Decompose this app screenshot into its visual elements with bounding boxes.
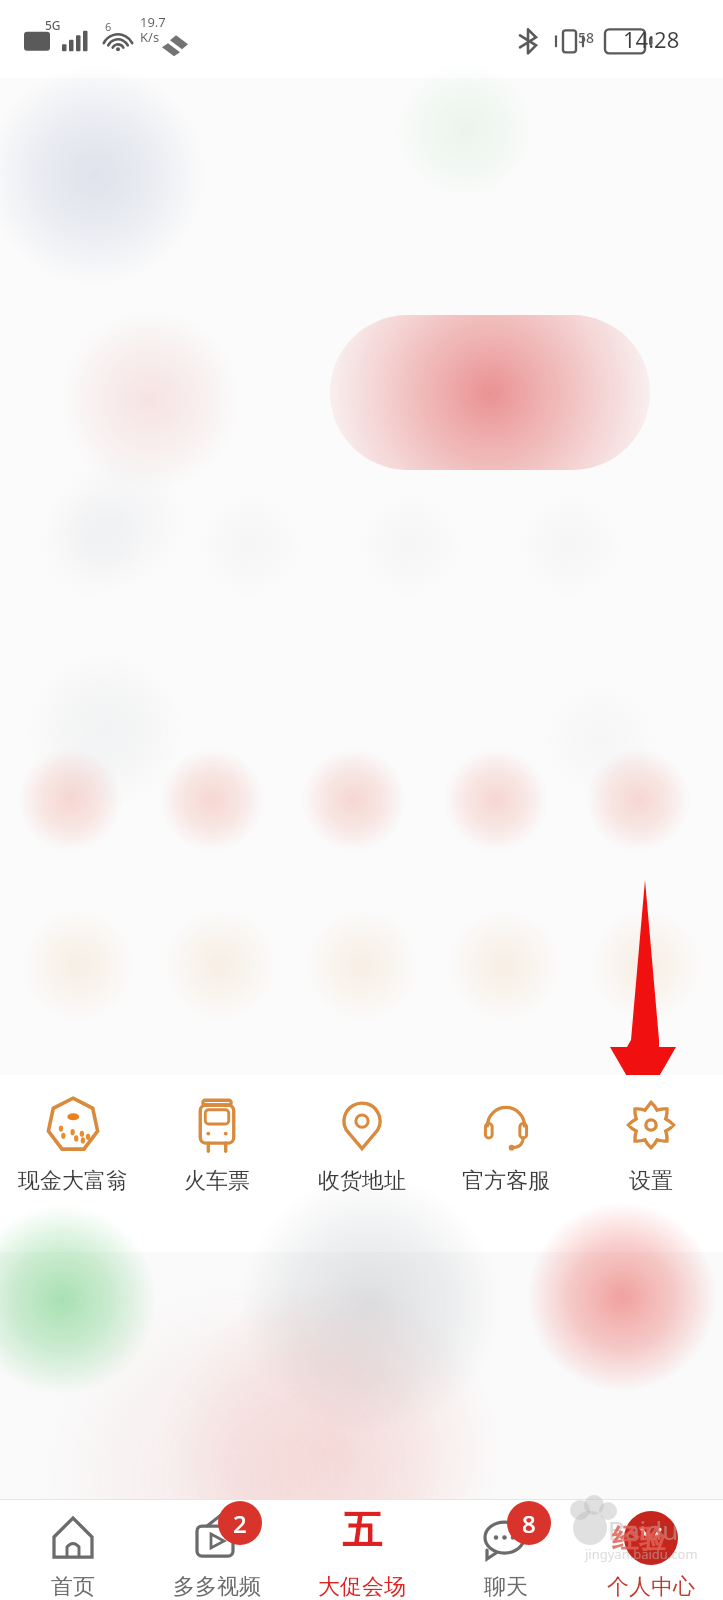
staticText: 个人中心 bbox=[607, 1573, 695, 1600]
staticText: 火车票 bbox=[184, 1167, 250, 1195]
staticText: 大促会场 bbox=[318, 1573, 406, 1600]
staticText: 6 bbox=[105, 19, 112, 34]
staticText: jingyan.baidu.com bbox=[585, 1545, 698, 1563]
button[interactable]: 首页 bbox=[1, 1505, 145, 1600]
button[interactable]: 个人中心 bbox=[579, 1505, 723, 1600]
staticText: 经验 bbox=[612, 1522, 666, 1556]
staticText: 收货地址 bbox=[318, 1167, 406, 1195]
staticText: 多多视频 bbox=[173, 1573, 261, 1600]
button[interactable]: 多多视频 bbox=[145, 1505, 289, 1600]
staticText: 14:28 bbox=[623, 24, 680, 54]
staticText: 设置 bbox=[629, 1167, 673, 1195]
button[interactable]: 大促会场 bbox=[290, 1505, 434, 1600]
button[interactable]: 收货地址 bbox=[290, 1097, 434, 1195]
button[interactable]: 设置 bbox=[579, 1097, 723, 1195]
staticText: 聊天 bbox=[484, 1573, 528, 1600]
staticText: 官方客服 bbox=[462, 1167, 550, 1195]
staticText: 19.7 K/s bbox=[140, 13, 166, 46]
button[interactable]: 官方客服 bbox=[434, 1097, 578, 1195]
staticText: 首页 bbox=[51, 1573, 95, 1600]
button[interactable]: 聊天 bbox=[434, 1505, 578, 1600]
button[interactable]: 现金大富翁 bbox=[1, 1097, 145, 1195]
staticText: 58 bbox=[578, 28, 595, 47]
staticText: Baidu bbox=[608, 1512, 679, 1547]
staticText: 2 bbox=[233, 1507, 247, 1540]
staticText: 现金大富翁 bbox=[18, 1167, 128, 1195]
staticText: 8 bbox=[522, 1507, 536, 1540]
staticText: 5G bbox=[45, 17, 61, 33]
button[interactable]: 火车票 bbox=[145, 1097, 289, 1195]
staticText: 五一 bbox=[329, 1505, 395, 1571]
